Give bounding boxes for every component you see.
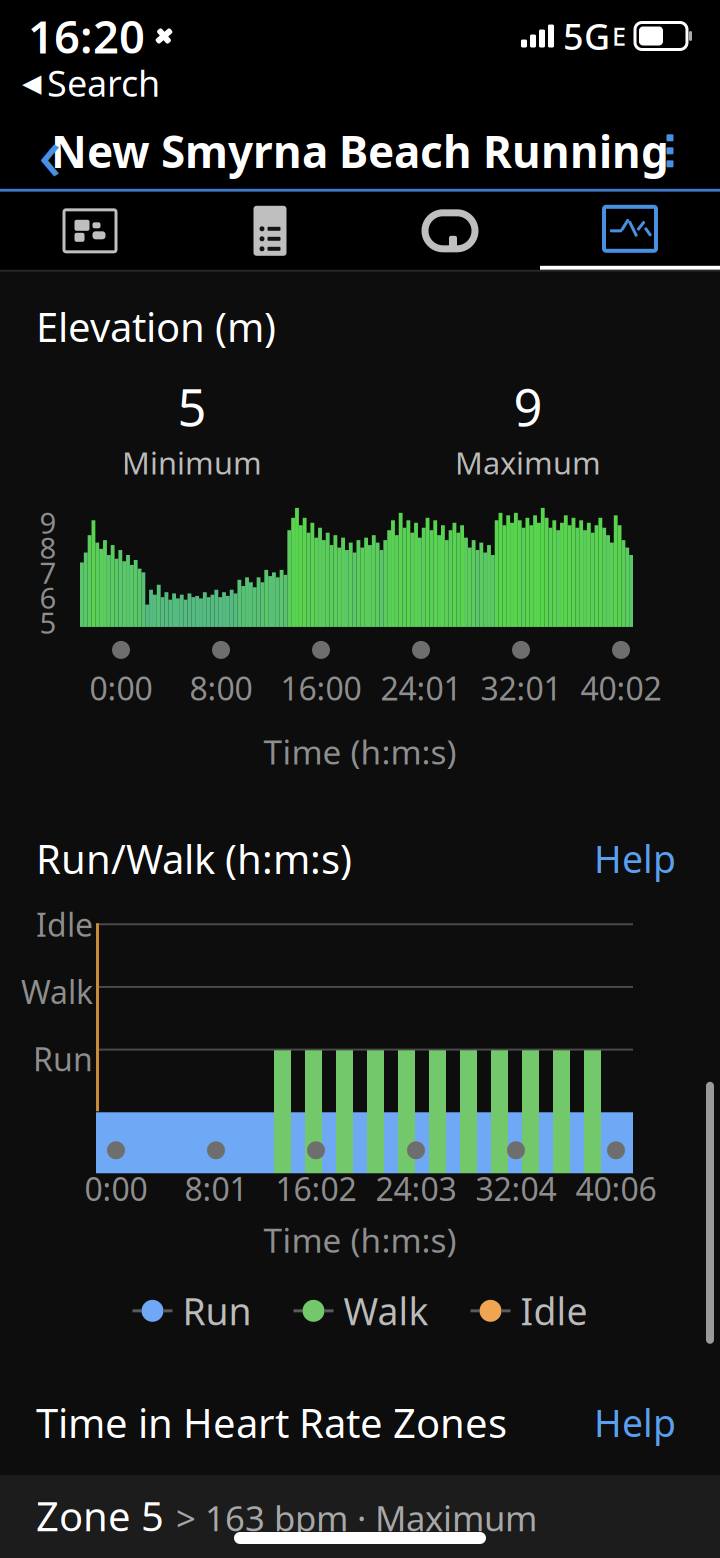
staticText: 5G [563,12,610,60]
staticText: 5 [39,603,56,642]
staticText: 40:06 [575,1167,656,1210]
staticText: 32:04 [475,1167,556,1210]
staticText: Elevation (m) [36,300,276,353]
button[interactable]: Help [586,1392,684,1453]
button[interactable]: More options [628,113,712,189]
staticText: 9 [513,373,542,440]
staticText: Time (h:m:s) [263,1218,456,1262]
staticText: 8:00 [189,667,252,709]
staticText: Run [33,1038,93,1080]
staticText: Help [594,1398,676,1447]
staticText: Search [47,59,160,107]
staticText: 24:01 [380,667,461,709]
button[interactable]: Map [0,192,180,270]
staticText: 8 [39,528,56,567]
button[interactable]: Summary [180,192,360,270]
staticText: Time (h:m:s) [263,729,456,774]
staticText: 7 [39,553,56,592]
staticText: 0:00 [84,1167,147,1210]
staticText: 5 [177,373,206,440]
staticText: Zone 5 [36,1489,164,1542]
staticText: Run [182,1286,251,1336]
staticText: Run/Walk (h:m:s) [36,832,352,885]
staticText: E [612,19,626,53]
button[interactable]: Zone 5 [0,1475,720,1558]
staticText: Minimum [122,442,262,483]
staticText: 8:01 [184,1167,247,1210]
staticText: 40:02 [580,667,661,709]
staticText: New Smyrna Beach Running [51,122,669,180]
staticText: 32:01 [480,667,561,709]
staticText: 9 [39,503,56,542]
staticText: 16:02 [275,1167,356,1210]
staticText: Walk [21,970,93,1013]
staticText: 16:20 [28,6,145,66]
staticText: Time in Heart Rate Zones [36,1396,507,1449]
staticText: Walk [343,1286,428,1336]
staticText: ‹ [38,99,62,202]
button[interactable]: Charts [540,192,720,270]
staticText: 24:03 [375,1167,456,1210]
button[interactable]: Help [586,828,684,889]
staticText: Help [594,834,676,883]
staticText: Maximum [455,442,601,483]
staticText: ◀ [22,68,41,97]
button[interactable]: Back [8,113,92,189]
staticText: 0:00 [89,667,152,709]
button[interactable]: ◀ [0,58,182,113]
staticText: Idle [36,903,93,945]
button[interactable]: Laps [360,192,540,270]
staticText: 6 [39,578,56,617]
staticText: 16:00 [280,667,361,709]
staticText: Idle [520,1286,587,1336]
staticText: > 163 bpm · Maximum [176,1495,537,1541]
